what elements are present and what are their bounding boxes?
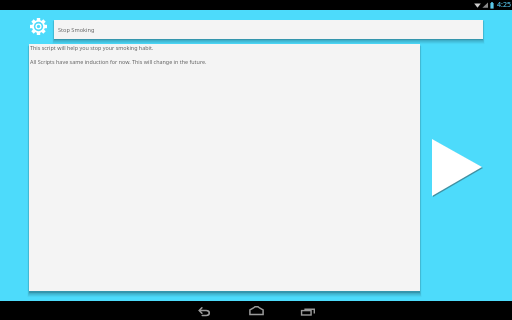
staticText: 4:25 (497, 0, 511, 10)
button[interactable]: Back (179, 301, 229, 320)
button[interactable]: Play (428, 133, 488, 203)
staticText: All Scripts have same induction for now.… (30, 58, 207, 65)
button[interactable]: Home (231, 301, 281, 320)
staticText: This script will help you stop your smok… (30, 44, 154, 51)
staticText: Stop Smoking (58, 26, 95, 34)
button[interactable]: Recents (283, 301, 333, 320)
button[interactable]: Stop Smoking (54, 20, 483, 39)
button[interactable]: Settings (26, 14, 50, 38)
